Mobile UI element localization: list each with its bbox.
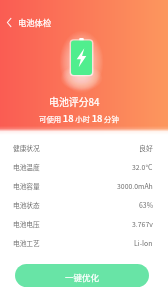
staticText: 电池容量 [13, 181, 40, 191]
button[interactable]: 一键优化 [15, 264, 149, 287]
staticText: 3000.0mAh [117, 181, 153, 191]
button[interactable]: Back [0, 11, 19, 33]
staticText: 良好 [139, 143, 153, 153]
staticText: 电池工艺 [13, 238, 40, 248]
staticText: 63% [139, 200, 153, 210]
button[interactable]: 电池温度 [0, 157, 168, 176]
button[interactable]: 健康状况 [0, 138, 168, 157]
staticText: 电池评分84 [49, 95, 100, 109]
staticText: 电池电压 [13, 219, 40, 229]
staticText: 可使用 18 小时 18 分钟 [39, 111, 119, 125]
button[interactable]: 电池容量 [0, 176, 168, 195]
button[interactable]: 电池状态 [0, 195, 168, 214]
button[interactable]: 电池电压 [0, 214, 168, 233]
staticText: 一键优化 [65, 271, 100, 283]
staticText: 电池状态 [13, 200, 40, 210]
staticText: 3.767v [132, 219, 153, 229]
staticText: 32.0°C [132, 162, 153, 172]
staticText: 健康状况 [13, 143, 40, 153]
staticText: 电池体检 [18, 16, 52, 28]
staticText: 电池温度 [13, 162, 40, 172]
button[interactable]: 电池工艺 [0, 233, 168, 252]
staticText: Li-Ion [134, 238, 153, 248]
